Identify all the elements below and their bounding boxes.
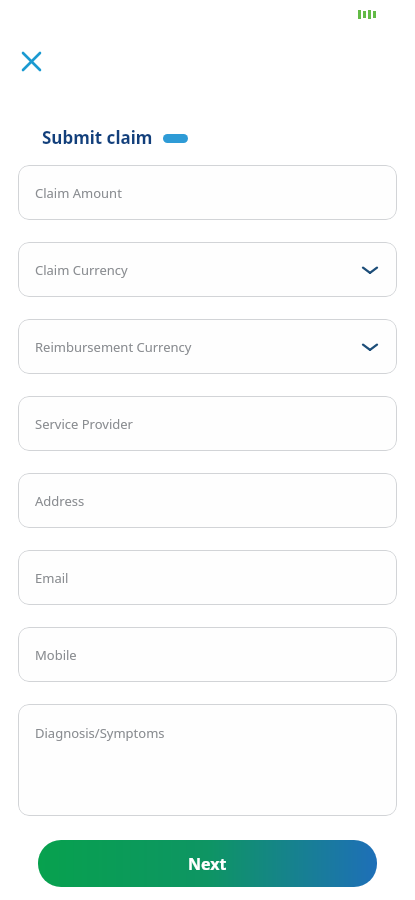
button[interactable]: Email bbox=[18, 550, 397, 605]
staticText: Claim Amount bbox=[35, 184, 122, 202]
button[interactable]: Claim Currency bbox=[18, 242, 397, 297]
staticText: Diagnosis/Symptoms bbox=[35, 724, 165, 742]
staticText: Next bbox=[188, 853, 227, 875]
staticText: Reimbursement Currency bbox=[35, 338, 192, 356]
button[interactable]: Reimbursement Currency bbox=[18, 319, 397, 374]
button[interactable]: Mobile bbox=[18, 627, 397, 682]
staticText: Claim Currency bbox=[35, 261, 128, 279]
staticText: Submit claim bbox=[42, 126, 153, 149]
button[interactable]: Diagnosis/Symptoms bbox=[18, 704, 397, 816]
button[interactable]: Close bbox=[14, 44, 48, 78]
button[interactable]: Service Provider bbox=[18, 396, 397, 451]
button[interactable]: Next bbox=[38, 840, 377, 887]
button[interactable]: Claim Amount bbox=[18, 165, 397, 220]
staticText: Service Provider bbox=[35, 415, 133, 433]
button[interactable]: Address bbox=[18, 473, 397, 528]
staticText: Mobile bbox=[35, 646, 77, 664]
staticText: Email bbox=[35, 569, 69, 587]
staticText: Address bbox=[35, 492, 85, 510]
